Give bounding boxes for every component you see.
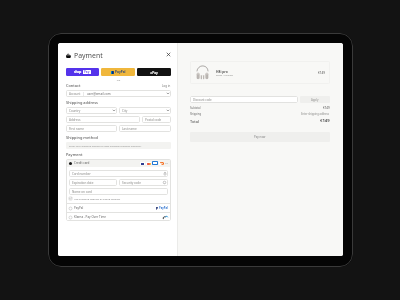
button[interactable]: Expiration date: [69, 179, 117, 186]
staticText: Log in: [162, 84, 171, 88]
staticText: H8i pro: [216, 69, 228, 73]
staticText: Payment: [66, 152, 83, 157]
staticText: Enter your shipping address to view avai…: [69, 144, 142, 147]
staticText: Name on card: [72, 190, 92, 194]
button[interactable]: Discount code: [190, 96, 298, 103]
staticText: Credit card: [74, 161, 90, 165]
button[interactable]: Country: [66, 107, 117, 114]
staticText: user@email.com: [87, 92, 111, 96]
button[interactable]: shop: [66, 68, 99, 76]
staticText: Shipping address: [66, 100, 98, 105]
staticText: Pay now: [254, 135, 266, 139]
button[interactable]: Klarna - Pay Over Time: [66, 213, 171, 221]
button[interactable]: Pay now: [190, 132, 330, 142]
button[interactable]: Postal code: [142, 116, 171, 123]
button[interactable]: Security code: [119, 179, 168, 186]
staticText: €149: [318, 71, 325, 75]
button[interactable]: Pay: [137, 68, 171, 76]
button[interactable]: Last name: [119, 125, 171, 132]
staticText: Shipping: [190, 112, 202, 116]
button[interactable]: City: [119, 107, 171, 114]
button[interactable]: Address: [66, 116, 140, 123]
staticText: Address: [69, 118, 81, 122]
staticText: Enter shipping address: [301, 112, 330, 116]
staticText: €149: [320, 118, 330, 124]
button[interactable]: Use shipping address as billing address: [69, 197, 121, 200]
staticText: Account: [69, 92, 81, 96]
staticText: Country: [69, 109, 81, 113]
staticText: OR: [66, 78, 171, 81]
staticText: Use shipping address as billing address: [74, 197, 121, 200]
staticText: Discount code: [193, 98, 212, 102]
button[interactable]: Card number: [69, 170, 168, 177]
staticText: PayPal: [115, 70, 126, 74]
staticText: Beige / Wireless: [216, 74, 234, 77]
staticText: Payment: [74, 51, 103, 60]
staticText: Contact: [66, 83, 81, 88]
staticText: Shipping method: [66, 135, 99, 140]
staticText: +4: [165, 162, 168, 165]
staticText: Postal code: [145, 118, 162, 122]
staticText: PayPal: [74, 206, 84, 210]
staticText: PayPal: [159, 206, 168, 210]
button[interactable]: First name: [66, 125, 117, 132]
staticText: €149: [323, 106, 330, 110]
staticText: shop: [74, 70, 82, 74]
staticText: Pay: [84, 70, 90, 74]
staticText: First name: [69, 127, 84, 131]
staticText: City: [122, 109, 128, 113]
button[interactable]: PayPal: [66, 204, 171, 212]
staticText: Security code: [122, 181, 141, 185]
staticText: Expiration date: [72, 181, 94, 185]
button[interactable]: Apply: [300, 96, 330, 103]
staticText: Subtotal: [190, 106, 201, 110]
staticText: Apply: [311, 98, 319, 102]
staticText: Pay: [150, 70, 158, 74]
button[interactable]: Account: [66, 90, 171, 97]
button[interactable]: Credit card: [66, 159, 171, 167]
staticText: Klarna - Pay Over Time: [74, 215, 106, 219]
button[interactable]: Name on card: [69, 188, 168, 195]
button[interactable]: PayPal: [101, 68, 135, 76]
staticText: Last name: [122, 127, 137, 131]
button[interactable]: Close: [165, 51, 171, 57]
staticText: Card number: [72, 172, 91, 176]
staticText: |: [83, 92, 85, 96]
staticText: Total: [190, 119, 200, 124]
